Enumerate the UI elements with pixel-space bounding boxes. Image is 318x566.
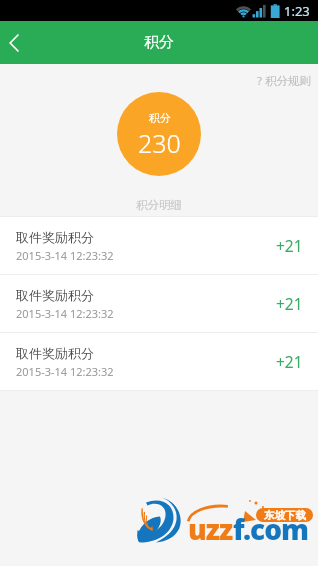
staticText: 2015-3-14 12:23:32 — [16, 248, 114, 263]
staticText: +21 — [276, 293, 303, 314]
staticText: 东坡下载 — [264, 509, 306, 522]
button[interactable]: Back — [0, 21, 34, 64]
button[interactable]: ? 积分规则 — [249, 69, 318, 93]
staticText: ? 积分规则 — [257, 73, 311, 89]
staticText: 取件奖励积分 — [16, 229, 94, 245]
staticText: 积分 — [149, 111, 171, 125]
button[interactable]: 取件奖励积分 — [0, 275, 318, 332]
staticText: 积分明细 — [136, 198, 182, 212]
staticText: f.com — [233, 510, 309, 548]
staticText: 2015-3-14 12:23:32 — [16, 364, 114, 379]
staticText: 1:23 — [284, 2, 310, 20]
staticText: 积分 — [144, 33, 174, 52]
staticText: 取件奖励积分 — [16, 287, 94, 303]
staticText: 230 — [138, 126, 181, 160]
staticText: 2015-3-14 12:23:32 — [16, 306, 114, 321]
button[interactable]: 取件奖励积分 — [0, 333, 318, 390]
staticText: uzz — [188, 510, 233, 548]
staticText: +21 — [276, 351, 303, 372]
staticText: +21 — [276, 235, 303, 256]
button[interactable]: 取件奖励积分 — [0, 217, 318, 274]
staticText: 取件奖励积分 — [16, 345, 94, 361]
